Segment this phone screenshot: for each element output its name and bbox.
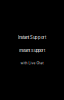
staticText: with Live Chat bbox=[20, 61, 43, 65]
staticText: Instant Support bbox=[18, 35, 46, 40]
staticText: Instant Support bbox=[19, 48, 45, 53]
